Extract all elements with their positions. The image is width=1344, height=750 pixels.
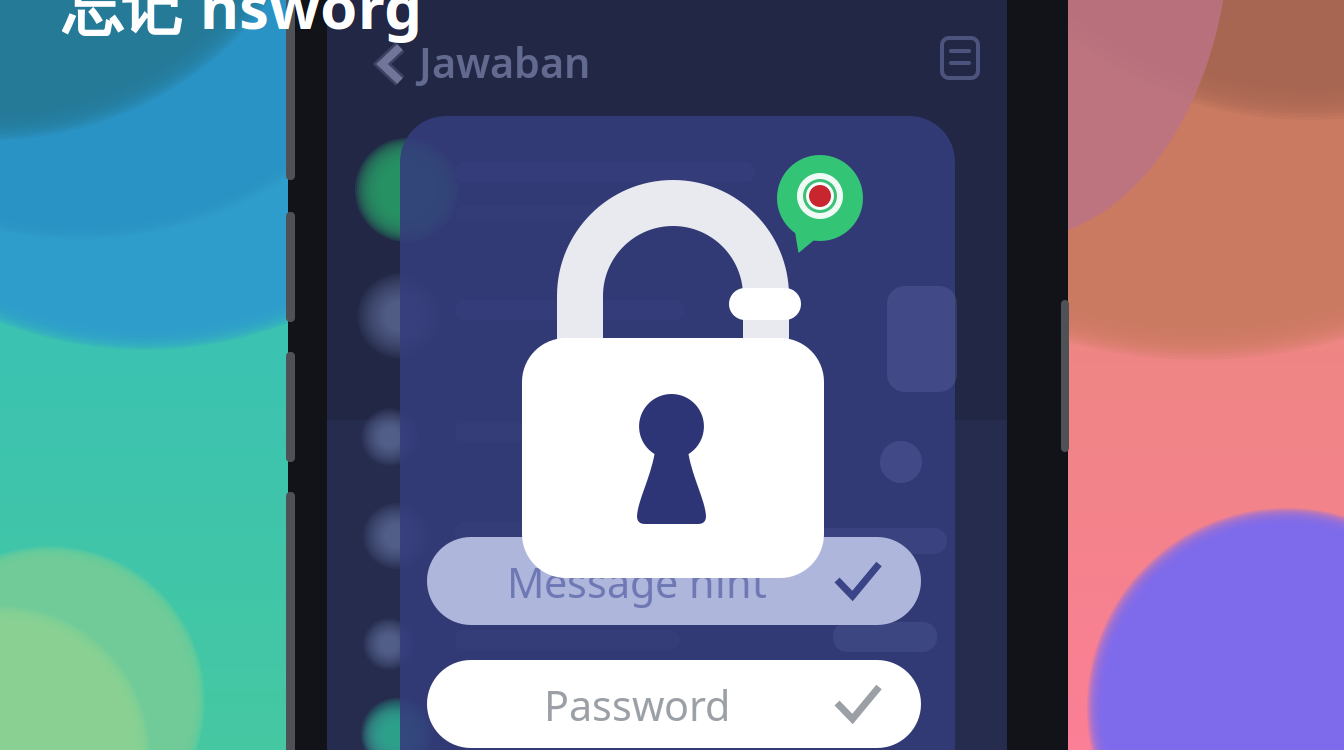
button[interactable]: Message hint — [327, 0, 1007, 750]
button[interactable]: Saved items — [327, 0, 1007, 750]
button[interactable]: Jawaban — [327, 0, 1007, 750]
staticText: Password — [544, 678, 730, 732]
staticText: Message hint — [507, 555, 767, 609]
button[interactable]: Password — [327, 0, 1007, 750]
staticText: Jawaban — [419, 35, 590, 89]
staticText: 忘记 nsworg — [62, 0, 422, 46]
button[interactable]: Back — [327, 0, 1007, 750]
